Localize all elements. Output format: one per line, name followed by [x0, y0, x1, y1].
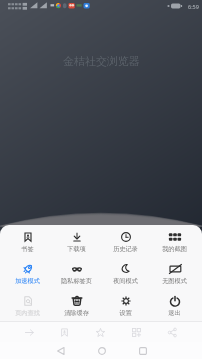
button[interactable]: 加速模式 — [3, 264, 52, 296]
staticText: 退出 — [168, 309, 181, 317]
button[interactable]: Home — [81, 342, 122, 359]
button[interactable]: Favorite — [82, 322, 118, 342]
staticText: 设置 — [119, 309, 132, 317]
staticText: 清除缓存 — [64, 309, 89, 317]
button[interactable]: 夜间模式 — [101, 264, 150, 296]
button[interactable]: 页内查找 — [3, 296, 52, 322]
button[interactable]: 退出 — [150, 296, 199, 322]
button[interactable]: 书签 — [3, 232, 52, 264]
staticText: 历史记录 — [113, 245, 138, 253]
button[interactable]: Recent apps — [122, 342, 163, 359]
button[interactable]: Bookmarks — [47, 322, 82, 342]
staticText: 金桔社交浏览器 — [63, 54, 140, 68]
button[interactable]: 下载项 — [52, 232, 101, 264]
staticText: 页内查找 — [15, 309, 40, 317]
button[interactable]: 设置 — [101, 296, 150, 322]
staticText: 夜间模式 — [113, 277, 138, 285]
staticText: 6:59 — [188, 3, 199, 10]
staticText: 书签 — [21, 245, 34, 253]
button[interactable]: Tabs — [118, 322, 154, 342]
button[interactable]: Forward — [12, 322, 47, 342]
staticText: 隐私标签页 — [61, 277, 92, 285]
button[interactable]: Back — [40, 342, 81, 359]
staticText: 无图模式 — [162, 277, 187, 285]
button[interactable]: Share — [154, 322, 190, 342]
button[interactable]: 无图模式 — [150, 264, 199, 296]
button[interactable]: 历史记录 — [101, 232, 150, 264]
staticText: 我的截图 — [162, 245, 187, 253]
staticText: 下载项 — [67, 245, 86, 253]
button[interactable]: 我的截图 — [150, 232, 199, 264]
staticText: 加速模式 — [15, 277, 40, 285]
button[interactable]: 隐私标签页 — [52, 264, 101, 296]
button[interactable]: 清除缓存 — [52, 296, 101, 322]
